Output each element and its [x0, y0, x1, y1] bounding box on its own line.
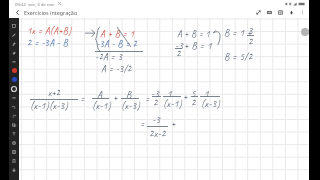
staticText: (x-1)	[92, 99, 112, 112]
staticText: -3	[152, 113, 161, 126]
staticText: x+2	[48, 87, 61, 99]
staticText: =	[80, 92, 85, 105]
button[interactable]: Stroke style	[9, 93, 19, 102]
staticText: (x-3)	[121, 99, 141, 112]
button[interactable]: Pen	[286, 7, 297, 18]
staticText: -3	[151, 87, 160, 100]
button[interactable]: Back	[13, 8, 22, 17]
button[interactable]: Pages	[9, 147, 19, 156]
button[interactable]: Colour	[9, 66, 19, 75]
staticText: B = 5/2	[224, 50, 253, 63]
staticText: +	[113, 91, 118, 104]
button[interactable]: Stroke width	[9, 57, 19, 66]
staticText: A	[97, 88, 103, 101]
staticText: +	[171, 117, 176, 130]
button[interactable]: Eraser	[275, 7, 286, 18]
staticText: =	[140, 117, 145, 130]
button[interactable]: Insert	[9, 138, 19, 147]
button[interactable]: Bookmark	[9, 156, 19, 165]
staticText: (x-3)	[201, 97, 221, 110]
staticText: 2 = -3A - B	[27, 37, 69, 49]
staticText: 2	[153, 96, 158, 109]
staticText: (x-1)	[163, 97, 183, 110]
button[interactable]: Expand	[253, 7, 264, 18]
staticText: (x-1)(x-3)	[30, 99, 69, 112]
button[interactable]: More options	[297, 7, 308, 18]
staticText: 09:42 sex, 3 de nov	[15, 1, 55, 7]
staticText: B = 1 +	[224, 26, 255, 39]
staticText: -3A - B = 2	[96, 38, 138, 50]
button[interactable]: Colour palette	[9, 84, 19, 93]
button[interactable]: Undo	[9, 102, 19, 111]
staticText: -2A = 3	[95, 51, 123, 63]
staticText: + B = 1	[184, 39, 212, 52]
staticText: -3	[175, 39, 184, 52]
staticText: 2x-2	[149, 127, 166, 140]
staticText: 1	[204, 87, 209, 100]
staticText: B	[126, 88, 132, 101]
button[interactable]: Shape	[9, 120, 19, 129]
staticText: A = -3/2	[101, 63, 132, 75]
staticText: 2	[248, 35, 253, 48]
button[interactable]: Lock	[9, 165, 19, 174]
button[interactable]: Text	[9, 129, 19, 138]
staticText: 3	[248, 24, 253, 37]
button[interactable]: Highlighter	[9, 39, 19, 48]
staticText: 2	[176, 47, 181, 60]
staticText: A + B = 1	[100, 28, 135, 40]
staticText: +	[183, 90, 188, 103]
button[interactable]: Pen	[9, 30, 19, 39]
button[interactable]: Page view	[264, 7, 275, 18]
staticText: 1	[167, 87, 172, 100]
staticText: 2	[191, 96, 196, 109]
staticText: 5	[191, 87, 196, 100]
staticText: 1x = A(A+B)	[27, 25, 72, 37]
staticText: Exercícios integração	[24, 9, 78, 16]
staticText: =	[145, 92, 150, 105]
button[interactable]: Colour	[9, 75, 19, 84]
button[interactable]: Select	[9, 21, 19, 30]
button[interactable]: Eraser	[9, 48, 19, 57]
staticText: A + B = 1	[177, 28, 210, 40]
button[interactable]: Redo	[9, 111, 19, 120]
